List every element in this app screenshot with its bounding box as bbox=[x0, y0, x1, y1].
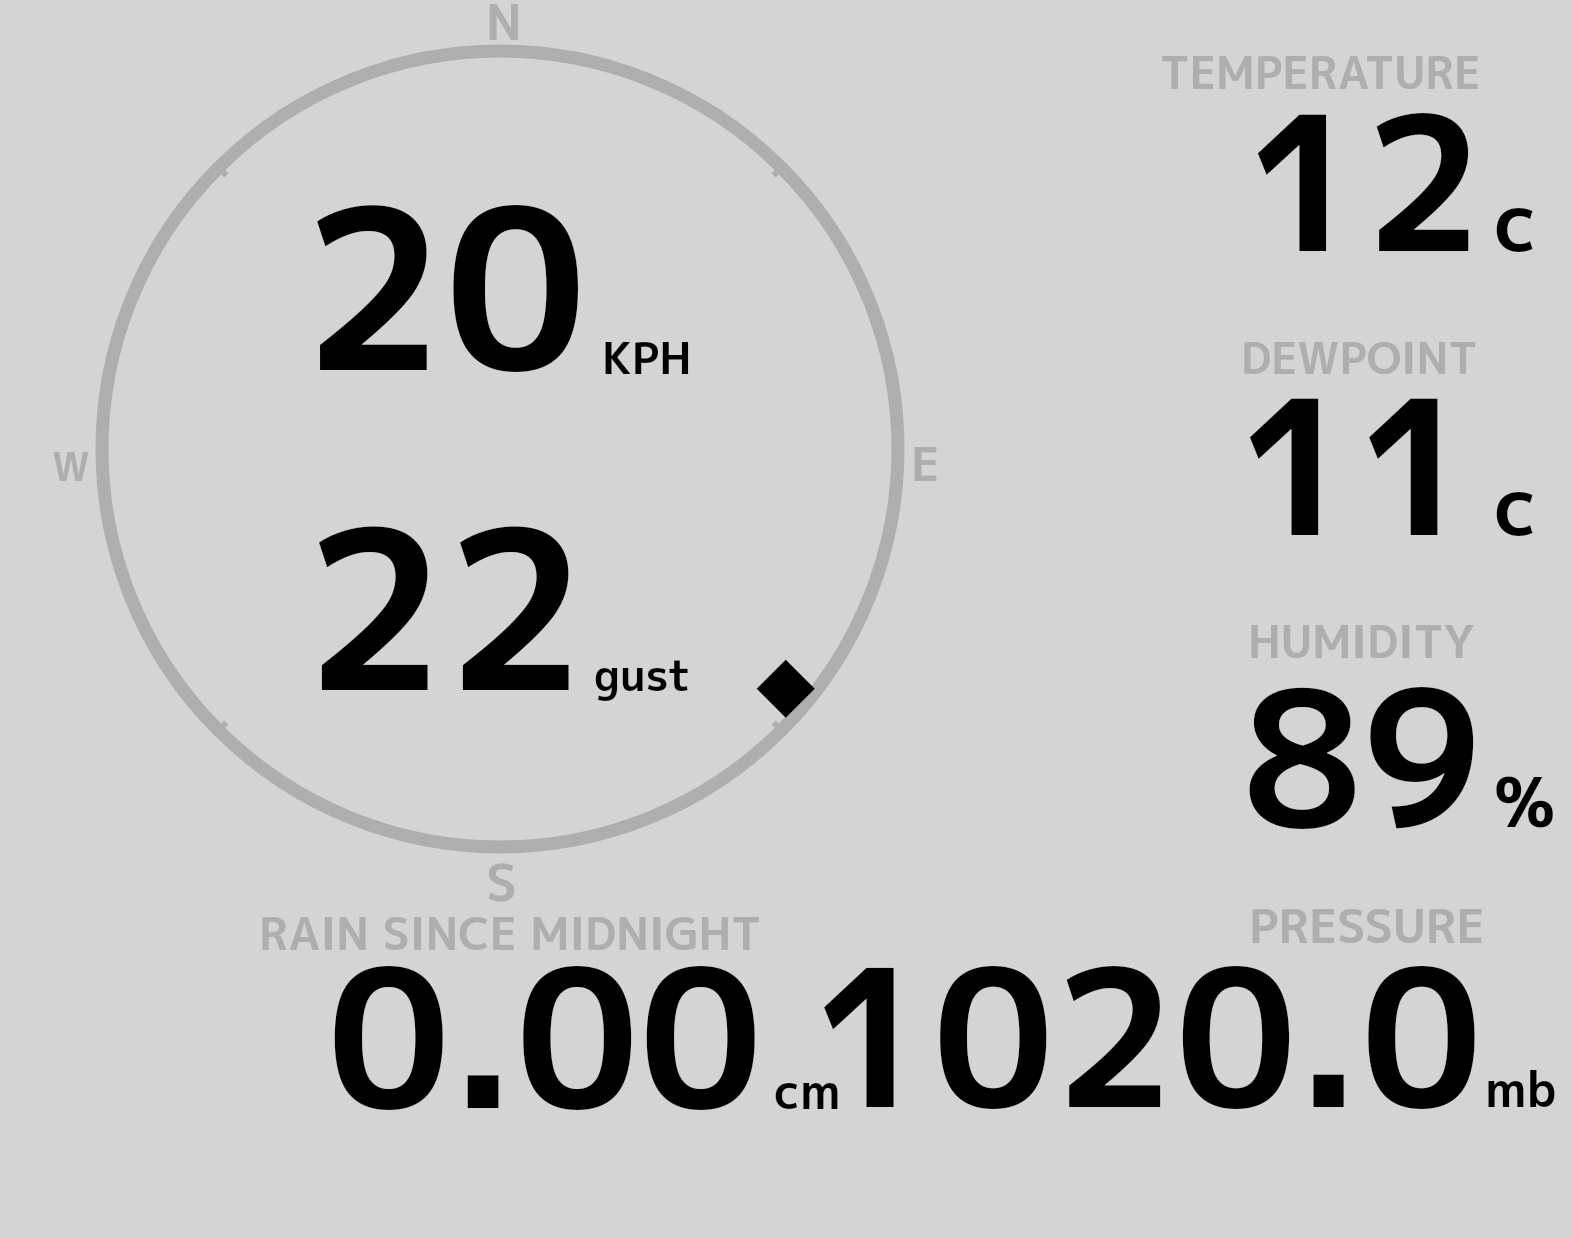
staticText: S bbox=[486, 846, 517, 917]
staticText: 89 bbox=[1242, 625, 1483, 887]
button[interactable]: Dewpoint 11 degrees Celsius bbox=[1150, 324, 1571, 544]
staticText: gust bbox=[594, 644, 691, 705]
staticText: N bbox=[486, 0, 522, 56]
staticText: c bbox=[1494, 449, 1538, 561]
button[interactable]: Temperature 12 degrees Celsius bbox=[1150, 40, 1571, 260]
button[interactable]: Humidity 89 percent bbox=[1150, 608, 1571, 836]
staticText: E bbox=[911, 430, 940, 496]
button[interactable]: Rain since midnight 0.00 centimetres bbox=[250, 900, 850, 1120]
staticText: 20 bbox=[302, 131, 587, 441]
staticText: 1020.0 bbox=[811, 903, 1483, 1168]
staticText: KPH bbox=[602, 327, 692, 388]
staticText: TEMPERATURE bbox=[1160, 42, 1481, 104]
staticText: 12 bbox=[1245, 51, 1484, 310]
staticText: 11 bbox=[1237, 335, 1476, 595]
staticText: c bbox=[1494, 165, 1538, 277]
staticText: 0.00 bbox=[327, 901, 763, 1170]
staticText: W bbox=[52, 439, 90, 493]
staticText: % bbox=[1494, 754, 1556, 849]
staticText: DEWPOINT bbox=[1241, 327, 1478, 388]
staticText: PRESSURE bbox=[1249, 892, 1485, 958]
staticText: cm bbox=[774, 1057, 841, 1124]
staticText: HUMIDITY bbox=[1248, 610, 1475, 672]
staticText: 22 bbox=[304, 453, 587, 760]
staticText: mb bbox=[1485, 1054, 1557, 1123]
button[interactable]: Wind compass, 20 KPH gusting 22, directi… bbox=[90, 39, 910, 859]
button[interactable]: Pressure 1020.0 millibars bbox=[860, 900, 1571, 1120]
staticText: RAIN SINCE MIDNIGHT bbox=[259, 902, 762, 964]
